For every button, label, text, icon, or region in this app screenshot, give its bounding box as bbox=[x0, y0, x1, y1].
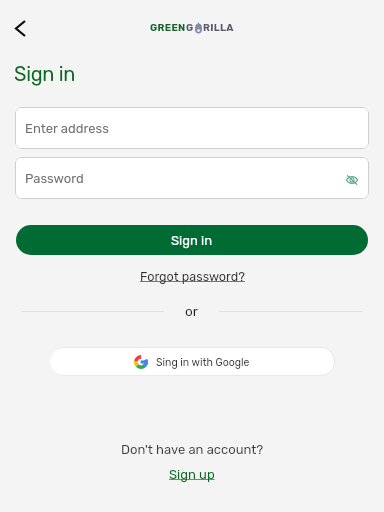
staticText: O bbox=[195, 22, 203, 34]
staticText: Enter address bbox=[25, 121, 109, 136]
button[interactable]: Sign up bbox=[169, 467, 215, 482]
button[interactable]: Forgot password? bbox=[140, 269, 245, 284]
staticText: Password bbox=[25, 171, 84, 186]
staticText: G bbox=[186, 22, 194, 34]
button[interactable]: Back bbox=[3, 11, 37, 45]
staticText: Don't have an account? bbox=[121, 442, 264, 457]
staticText: GREEN bbox=[150, 22, 186, 34]
staticText: Forgot password? bbox=[140, 269, 245, 284]
staticText: Sign in bbox=[14, 62, 76, 86]
staticText: Sign in bbox=[171, 233, 213, 248]
button[interactable]: Show password bbox=[339, 167, 365, 193]
button[interactable]: Password bbox=[15, 157, 369, 199]
staticText: Sing in with Google bbox=[156, 356, 250, 368]
staticText: Sign up bbox=[169, 467, 215, 482]
button[interactable]: Sign in bbox=[16, 225, 368, 255]
staticText: or bbox=[185, 303, 198, 319]
staticText: RILLA bbox=[203, 22, 234, 34]
button[interactable]: Sing in with Google bbox=[50, 348, 334, 375]
button[interactable]: Enter address bbox=[15, 107, 369, 149]
